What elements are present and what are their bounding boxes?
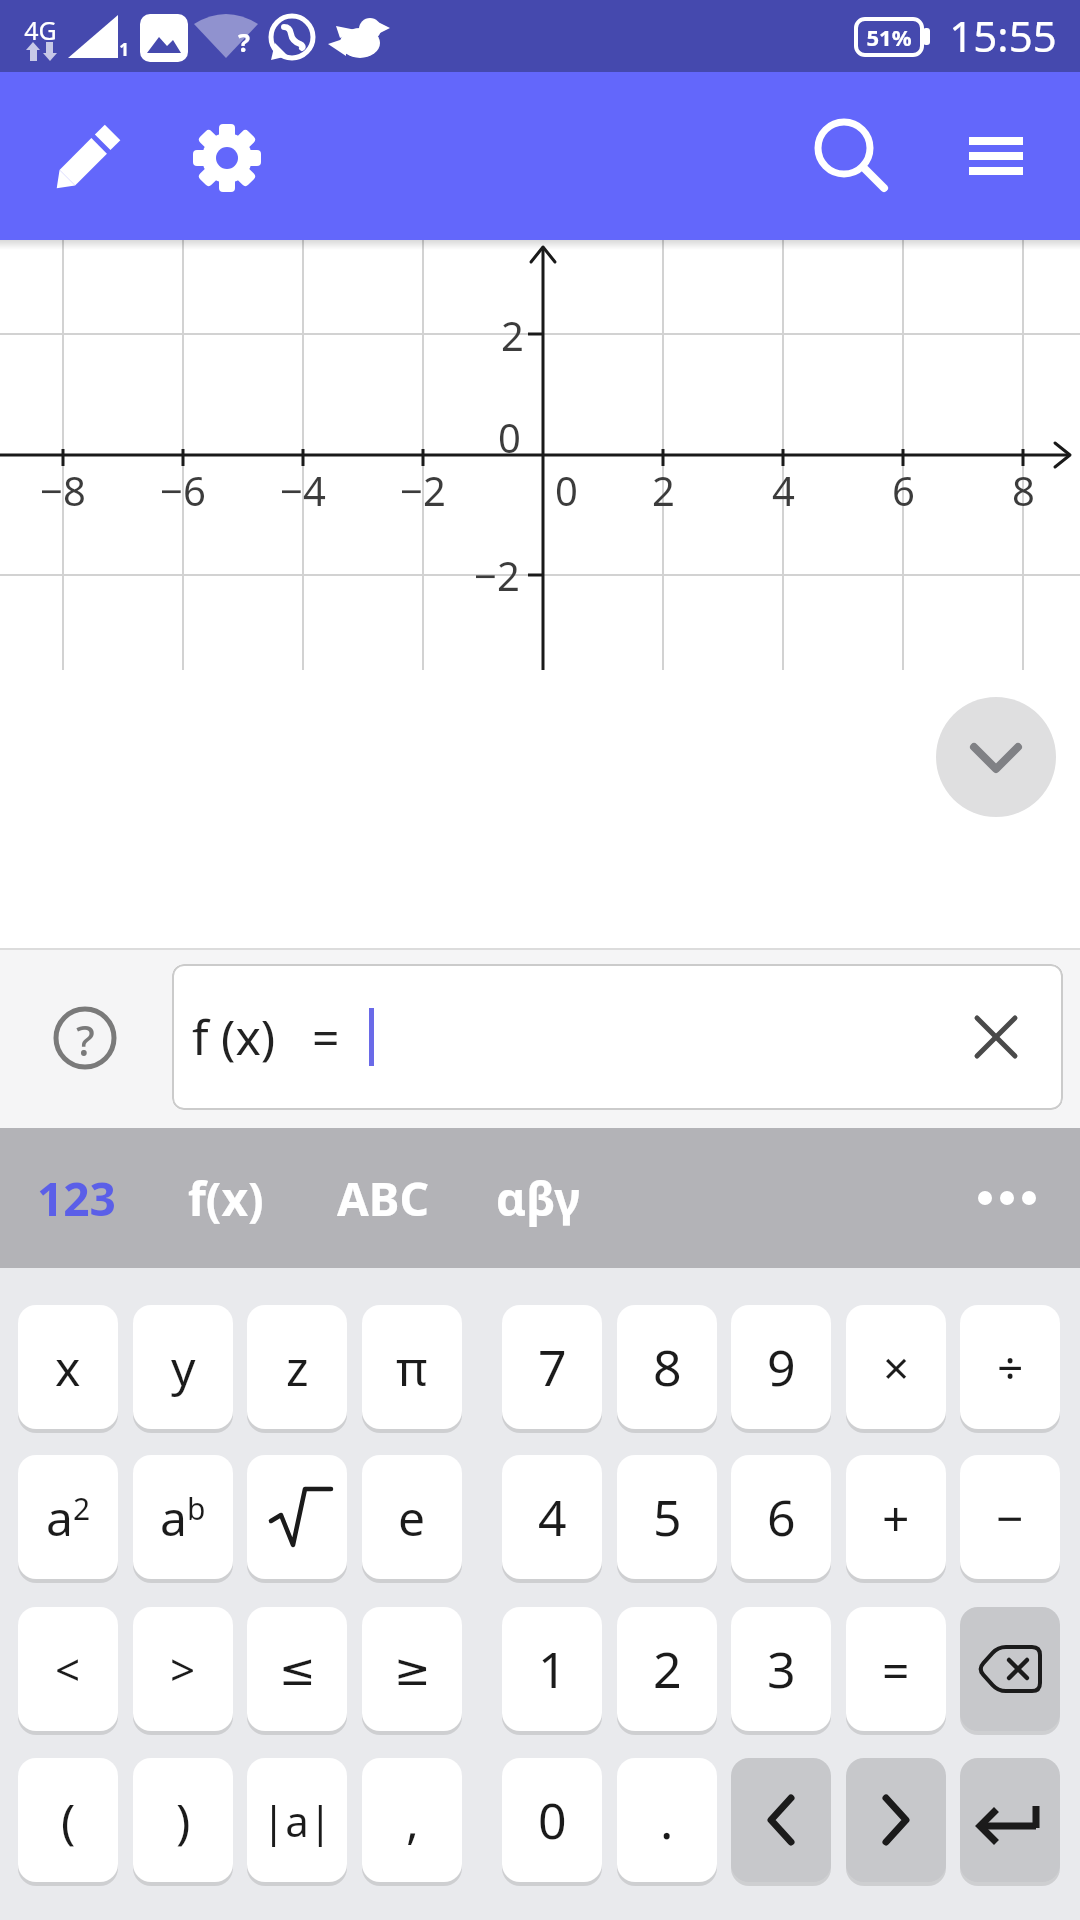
- button[interactable]: |a|: [247, 1758, 347, 1882]
- button[interactable]: ×: [846, 1305, 946, 1429]
- button[interactable]: [794, 100, 894, 200]
- staticText: ab: [160, 1485, 206, 1550]
- staticText: π: [396, 1335, 428, 1400]
- button[interactable]: [947, 1148, 1067, 1248]
- button[interactable]: >: [133, 1607, 233, 1731]
- button[interactable]: 5: [617, 1455, 717, 1579]
- staticText: 8: [1012, 463, 1035, 517]
- button[interactable]: 0: [502, 1758, 602, 1882]
- button[interactable]: +: [846, 1455, 946, 1579]
- staticText: =: [882, 1637, 910, 1702]
- button[interactable]: [731, 1758, 831, 1882]
- staticText: (: [61, 1788, 76, 1853]
- button[interactable]: 3: [731, 1607, 831, 1731]
- button[interactable]: [846, 1758, 946, 1882]
- staticText: ,: [406, 1788, 419, 1853]
- staticText: z: [286, 1335, 309, 1400]
- button[interactable]: 8: [617, 1305, 717, 1429]
- staticText: −2: [400, 463, 446, 517]
- staticText: 51%: [866, 22, 912, 52]
- staticText: ): [176, 1788, 191, 1853]
- staticText: y: [171, 1335, 196, 1400]
- staticText: −2: [474, 548, 520, 602]
- button[interactable]: 7: [502, 1305, 602, 1429]
- staticText: −4: [280, 463, 326, 517]
- button[interactable]: z: [247, 1305, 347, 1429]
- staticText: <: [55, 1639, 81, 1699]
- button[interactable]: ab: [133, 1455, 233, 1579]
- staticText: 0: [538, 1786, 567, 1854]
- button[interactable]: ÷: [960, 1305, 1060, 1429]
- button[interactable]: [35, 107, 135, 207]
- button[interactable]: 123: [16, 1148, 136, 1248]
- staticText: ?: [76, 1011, 95, 1068]
- staticText: −8: [40, 463, 86, 517]
- staticText: 5: [653, 1483, 682, 1551]
- staticText: ?: [238, 25, 250, 59]
- staticText: 123: [37, 1167, 116, 1230]
- staticText: 0: [555, 463, 578, 517]
- button[interactable]: [247, 1455, 347, 1579]
- button[interactable]: 4: [502, 1455, 602, 1579]
- staticText: =: [312, 1004, 340, 1069]
- staticText: ≥: [394, 1644, 431, 1695]
- button[interactable]: f(x): [166, 1148, 286, 1248]
- button[interactable]: y: [133, 1305, 233, 1429]
- button[interactable]: <: [18, 1607, 118, 1731]
- staticText: ABC: [337, 1167, 429, 1230]
- staticText: −: [996, 1485, 1024, 1550]
- button[interactable]: a2: [18, 1455, 118, 1579]
- staticText: −6: [160, 463, 206, 517]
- button[interactable]: αβγ: [478, 1148, 598, 1248]
- button[interactable]: [936, 697, 1056, 817]
- button[interactable]: 9: [731, 1305, 831, 1429]
- staticText: 7: [538, 1333, 567, 1401]
- button[interactable]: −: [960, 1455, 1060, 1579]
- staticText: f(x): [188, 1167, 264, 1230]
- button[interactable]: π: [362, 1305, 462, 1429]
- staticText: ≤: [279, 1644, 316, 1695]
- button[interactable]: 6: [731, 1455, 831, 1579]
- button[interactable]: ABC: [323, 1148, 443, 1248]
- staticText: f (x): [192, 1004, 276, 1069]
- button[interactable]: f (x): [172, 964, 1063, 1110]
- staticText: 6: [892, 463, 915, 517]
- staticText: 4G: [24, 13, 57, 47]
- button[interactable]: [960, 1758, 1060, 1882]
- button[interactable]: .: [617, 1758, 717, 1882]
- button[interactable]: ,: [362, 1758, 462, 1882]
- button[interactable]: [946, 105, 1046, 205]
- staticText: 4: [538, 1483, 567, 1551]
- button[interactable]: [946, 987, 1046, 1087]
- button[interactable]: [960, 1607, 1060, 1731]
- button[interactable]: ≤: [247, 1607, 347, 1731]
- button[interactable]: 2: [617, 1607, 717, 1731]
- staticText: ÷: [997, 1336, 1024, 1399]
- staticText: 8: [653, 1333, 682, 1401]
- button[interactable]: 1: [502, 1607, 602, 1731]
- staticText: x: [55, 1335, 81, 1400]
- button[interactable]: =: [846, 1607, 946, 1731]
- staticText: 2: [501, 308, 524, 362]
- staticText: 2: [652, 463, 675, 517]
- staticText: >: [170, 1639, 196, 1699]
- staticText: e: [398, 1485, 426, 1550]
- button[interactable]: ): [133, 1758, 233, 1882]
- staticText: 15:55: [949, 7, 1057, 64]
- staticText: 1: [538, 1635, 567, 1703]
- button[interactable]: e: [362, 1455, 462, 1579]
- staticText: 4: [772, 463, 795, 517]
- staticText: |a|: [262, 1792, 332, 1849]
- staticText: ×: [883, 1336, 910, 1399]
- staticText: 3: [767, 1635, 796, 1703]
- staticText: +: [882, 1485, 910, 1550]
- button[interactable]: ≥: [362, 1607, 462, 1731]
- staticText: 1: [119, 38, 129, 61]
- staticText: αβγ: [496, 1167, 581, 1230]
- button[interactable]: ?: [35, 988, 135, 1088]
- staticText: 2: [653, 1635, 682, 1703]
- staticText: a2: [46, 1485, 91, 1550]
- button[interactable]: [177, 107, 277, 207]
- button[interactable]: (: [18, 1758, 118, 1882]
- button[interactable]: x: [18, 1305, 118, 1429]
